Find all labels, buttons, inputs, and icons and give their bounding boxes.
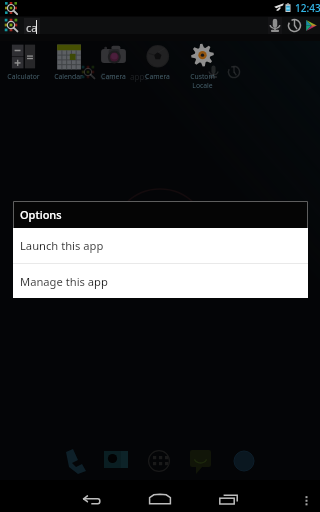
staticText: Camera <box>101 72 126 81</box>
button[interactable]: Recent apps <box>210 486 246 512</box>
staticText: Manage this app <box>20 274 108 289</box>
staticText: 12:43 <box>295 1 320 15</box>
button[interactable]: More options <box>293 486 320 512</box>
button[interactable]: Home <box>142 486 178 512</box>
staticText: Options <box>20 207 62 222</box>
button[interactable]: Manage this app <box>13 264 308 298</box>
button[interactable]: Custom Locale <box>180 40 224 88</box>
staticText: apps <box>130 71 149 82</box>
button[interactable]: Search history <box>287 18 302 33</box>
staticText: Goo <box>100 71 116 82</box>
button[interactable]: Back <box>74 486 110 512</box>
staticText: Calculator <box>7 72 40 81</box>
button[interactable]: Play Store <box>305 19 317 32</box>
staticText: Custom Locale <box>190 72 215 88</box>
staticText: Camera <box>145 72 170 81</box>
staticText: Launch this app <box>20 238 104 253</box>
button[interactable]: Calculator <box>1 40 45 81</box>
button[interactable]: Launch this app <box>13 228 308 263</box>
button[interactable]: Calendar <box>46 40 90 81</box>
button[interactable]: Camera <box>91 40 135 81</box>
staticText: ca <box>26 20 38 35</box>
button[interactable]: Camera <box>135 40 179 81</box>
staticText: Calendar <box>54 72 83 81</box>
button[interactable]: Voice search <box>268 17 282 34</box>
button[interactable]: Search <box>0 17 23 34</box>
